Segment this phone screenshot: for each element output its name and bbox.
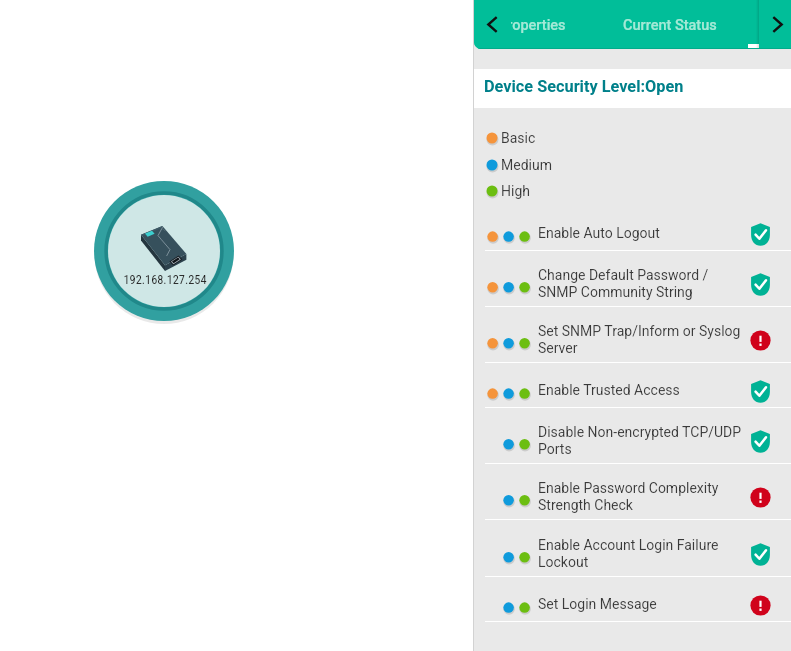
staticText: Current Status — [623, 17, 717, 34]
button[interactable]: Basic — [485, 126, 536, 150]
staticText: Set SNMP Trap/Inform or Syslog — [538, 323, 741, 339]
button[interactable]: Set SNMP Trap/Inform or Syslog — [474, 307, 791, 363]
button[interactable]: Next page — [759, 0, 791, 49]
button[interactable]: Enable Account Login Failure — [474, 521, 791, 577]
staticText: SNMP Community String — [538, 284, 693, 300]
button[interactable]: Device 192.168.127.254 — [94, 181, 234, 321]
staticText: Medium — [501, 157, 552, 173]
button[interactable]: Enable Password Complexity — [474, 464, 791, 520]
staticText: Lockout — [538, 554, 589, 570]
button[interactable]: Change Default Password / — [474, 251, 791, 307]
button[interactable]: Set Login Message — [474, 577, 791, 622]
staticText: Ports — [538, 441, 572, 457]
staticText: Basic — [501, 130, 536, 146]
button[interactable]: Previous page — [474, 0, 511, 49]
staticText: Enable Trusted Access — [538, 382, 680, 398]
staticText: Properties — [498, 17, 566, 34]
button[interactable]: Enable Trusted Access — [474, 363, 791, 408]
staticText: Enable Account Login Failure — [538, 537, 719, 553]
button[interactable]: Enable Auto Logout — [474, 206, 791, 251]
staticText: Enable Auto Logout — [538, 225, 660, 241]
button[interactable]: High — [485, 179, 530, 203]
staticText: Server — [538, 340, 578, 356]
staticText: 192.168.127.254 — [123, 272, 207, 287]
button[interactable] — [474, 69, 791, 108]
staticText: Disable Non-encrypted TCP/UDP — [538, 424, 742, 440]
button[interactable]: Medium — [485, 153, 552, 177]
button[interactable]: Disable Non-encrypted TCP/UDP — [474, 408, 791, 464]
staticText: Strength Check — [538, 497, 633, 513]
staticText: Set Login Message — [538, 596, 657, 612]
staticText: Change Default Password / — [538, 267, 709, 283]
staticText: High — [501, 183, 530, 199]
staticText: Enable Password Complexity — [538, 480, 719, 496]
staticText: Device Security Level:Open — [484, 77, 684, 96]
